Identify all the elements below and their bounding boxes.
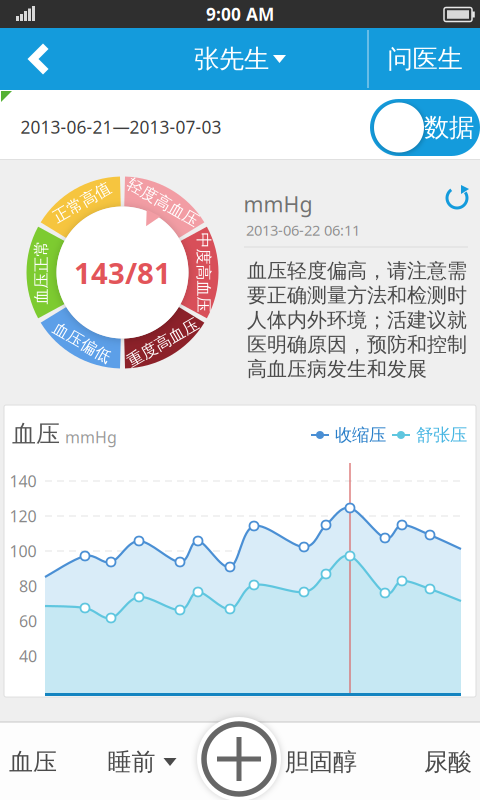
staticText: 数据 bbox=[424, 112, 474, 143]
staticText: 140 bbox=[9, 470, 36, 492]
staticText: 2013-06-22 06:11 bbox=[246, 220, 360, 240]
staticText: 9:00 AM bbox=[206, 2, 274, 25]
staticText: mmHg bbox=[243, 190, 312, 218]
staticText: 正常高值 bbox=[50, 192, 114, 212]
staticText: 收缩压 bbox=[335, 424, 386, 446]
staticText: 血压偏低 bbox=[50, 333, 114, 352]
staticText: 血压 bbox=[9, 747, 57, 777]
staticText: 人体内外环境；活建议就 bbox=[247, 308, 467, 332]
button[interactable]: 胆固醇 bbox=[271, 727, 371, 797]
button[interactable]: 问医生 bbox=[370, 28, 480, 90]
button[interactable]: 睡前 bbox=[87, 727, 197, 797]
staticText: 尿酸 bbox=[424, 747, 472, 777]
staticText: mmHg bbox=[65, 426, 117, 448]
staticText: 张先生 bbox=[194, 43, 269, 74]
staticText: 舒张压 bbox=[416, 424, 467, 446]
staticText: 重度高血压 bbox=[123, 333, 203, 352]
staticText: 轻度高血压 bbox=[123, 192, 203, 212]
button[interactable]: 数据 bbox=[370, 99, 480, 156]
staticText: 血压正常 bbox=[9, 263, 73, 282]
staticText: 143/81 bbox=[74, 253, 171, 292]
staticText: 医明确原因，预防和控制 bbox=[247, 332, 467, 357]
staticText: 中度高血压 bbox=[163, 263, 243, 282]
staticText: 2013-06-21—2013-07-03 bbox=[20, 115, 221, 138]
button[interactable]: 张先生 bbox=[194, 43, 286, 74]
staticText: 高血压病发生和发展 bbox=[247, 357, 427, 381]
staticText: 血压 bbox=[12, 419, 60, 449]
staticText: 血压轻度偏高，请注意需 bbox=[247, 259, 467, 283]
button[interactable]: 尿酸 bbox=[408, 727, 480, 797]
button[interactable]: 血压 bbox=[0, 727, 73, 797]
staticText: 睡前 bbox=[107, 747, 155, 777]
button[interactable]: 刷新 bbox=[444, 185, 470, 211]
button[interactable]: 添加 bbox=[197, 717, 281, 800]
staticText: 120 bbox=[9, 505, 36, 527]
staticText: 100 bbox=[9, 540, 36, 562]
staticText: 80 bbox=[19, 575, 37, 597]
button[interactable]: Back bbox=[16, 37, 60, 81]
staticText: 要正确测量方法和检测时 bbox=[247, 283, 467, 308]
staticText: 问医生 bbox=[387, 43, 462, 74]
staticText: 60 bbox=[19, 610, 37, 632]
staticText: 胆固醇 bbox=[285, 747, 357, 777]
staticText: 40 bbox=[19, 645, 37, 667]
